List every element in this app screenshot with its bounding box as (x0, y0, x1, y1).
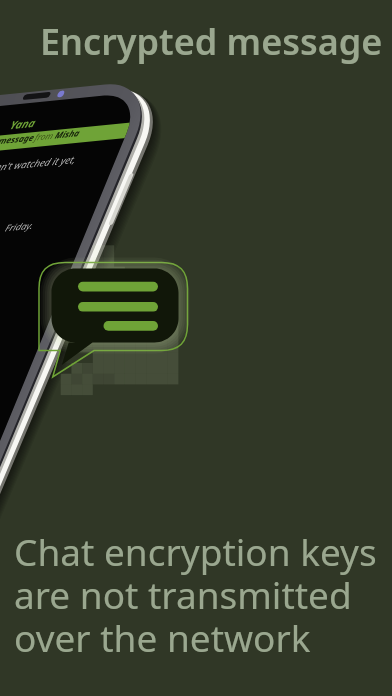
staticText: Chat encryption keys are not transmitted… (14, 526, 377, 663)
staticText: Encrypted message (40, 17, 383, 66)
